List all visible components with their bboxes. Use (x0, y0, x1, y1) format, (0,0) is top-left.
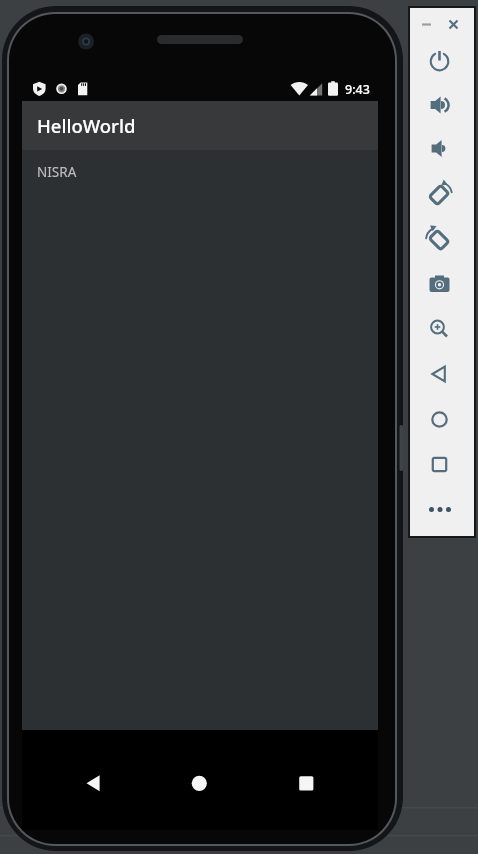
button[interactable] (427, 497, 451, 521)
button[interactable] (427, 137, 451, 161)
button[interactable] (427, 272, 451, 296)
staticText: 9:43 (345, 81, 370, 98)
button[interactable] (427, 362, 451, 386)
button[interactable] (290, 767, 322, 799)
button[interactable] (427, 49, 451, 73)
button[interactable] (427, 93, 451, 117)
button[interactable]: NISRA (22, 150, 378, 194)
button[interactable] (427, 407, 451, 431)
button[interactable] (427, 227, 451, 251)
button[interactable] (427, 182, 451, 206)
button[interactable] (446, 16, 462, 32)
button[interactable] (427, 452, 451, 476)
button[interactable] (80, 767, 112, 799)
staticText: HelloWorld (37, 113, 136, 138)
button[interactable] (418, 16, 434, 32)
button[interactable] (427, 317, 451, 341)
button[interactable] (183, 767, 215, 799)
staticText: NISRA (37, 163, 77, 181)
